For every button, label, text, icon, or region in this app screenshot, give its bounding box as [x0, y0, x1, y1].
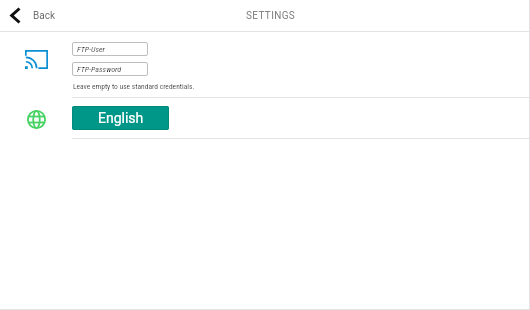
staticText: Leave empty to use standard credentials.: [73, 82, 195, 91]
staticText: English: [98, 110, 144, 126]
button[interactable]: Back: [10, 3, 55, 28]
button[interactable]: FTP-Password: [72, 62, 148, 76]
staticText: FTP-User: [77, 45, 105, 54]
staticText: SETTINGS: [246, 10, 296, 22]
button[interactable]: FTP-User: [72, 42, 148, 56]
staticText: FTP-Password: [77, 65, 122, 74]
button[interactable]: English: [72, 106, 169, 130]
staticText: Back: [33, 10, 55, 22]
other: Back: [10, 7, 21, 24]
